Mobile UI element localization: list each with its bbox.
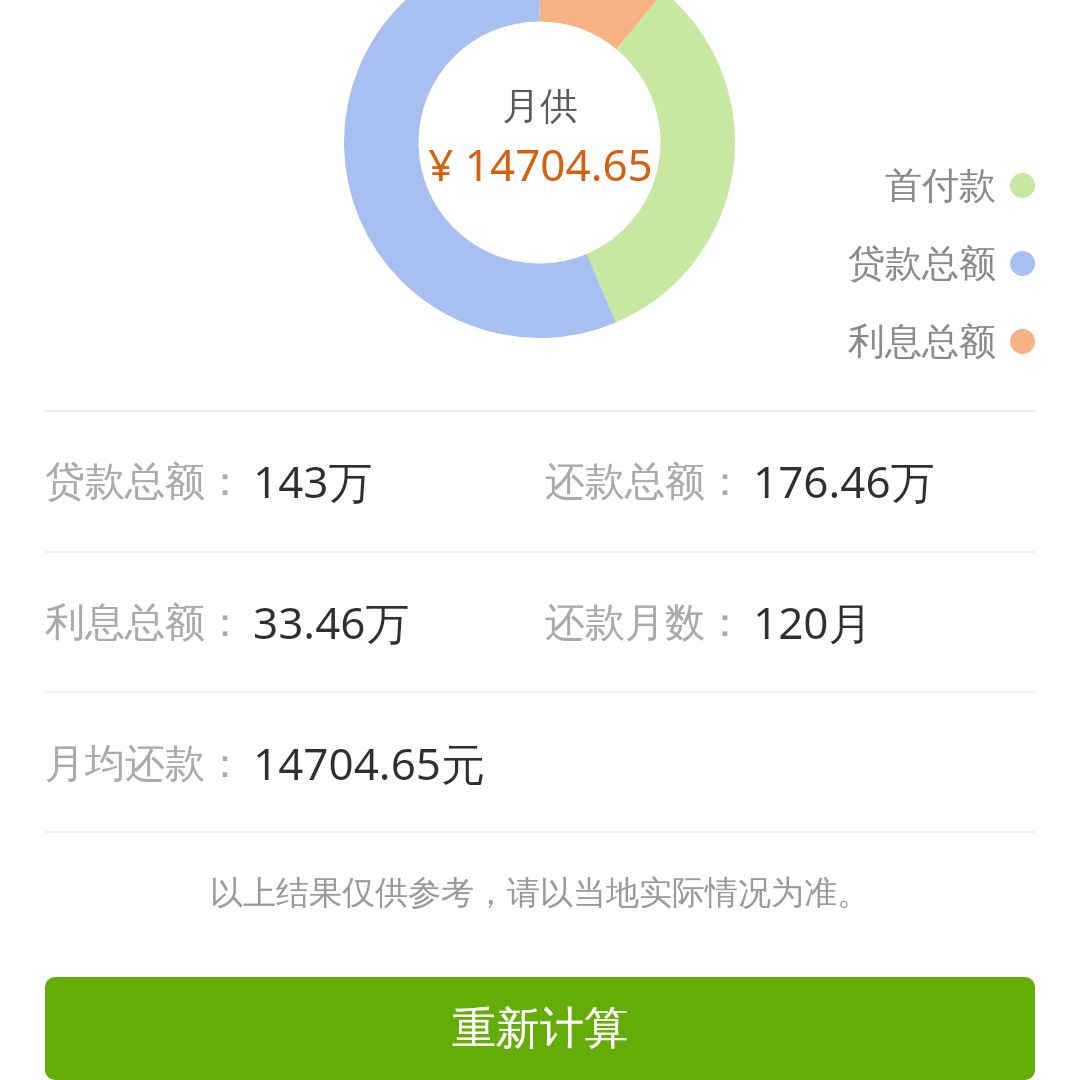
staticText: 月供 <box>502 82 578 130</box>
staticText: 以上结果仅供参考，请以当地实际情况为准。 <box>210 872 870 914</box>
staticText: 利息总额： <box>45 597 245 647</box>
staticText: 贷款总额 <box>848 240 996 287</box>
button[interactable]: 贷款总额： <box>45 449 373 513</box>
staticText: 176.46万 <box>753 451 935 511</box>
staticText: 14704.65元 <box>253 733 485 793</box>
button[interactable]: 还款月数： <box>545 590 873 654</box>
staticText: 33.46万 <box>253 592 410 652</box>
button[interactable]: 利息总额 <box>0 315 1035 367</box>
staticText: 利息总额 <box>848 318 996 365</box>
staticText: 重新计算 <box>452 1001 628 1056</box>
staticText: 还款总额： <box>545 456 745 506</box>
button[interactable]: 贷款总额 <box>0 237 1035 289</box>
staticText: 120月 <box>753 592 873 652</box>
button[interactable]: 利息总额： <box>45 590 410 654</box>
staticText: 贷款总额： <box>45 456 245 506</box>
staticText: ¥ 14704.65 <box>428 134 653 194</box>
button[interactable]: 还款总额： <box>545 449 935 513</box>
staticText: 还款月数： <box>545 597 745 647</box>
button[interactable]: 重新计算 <box>45 977 1035 1080</box>
staticText: 月均还款： <box>45 738 245 788</box>
button[interactable]: 月均还款： <box>45 731 485 795</box>
button[interactable]: 首付款 <box>0 159 1035 211</box>
staticText: 143万 <box>253 451 373 511</box>
staticText: 首付款 <box>885 162 996 209</box>
